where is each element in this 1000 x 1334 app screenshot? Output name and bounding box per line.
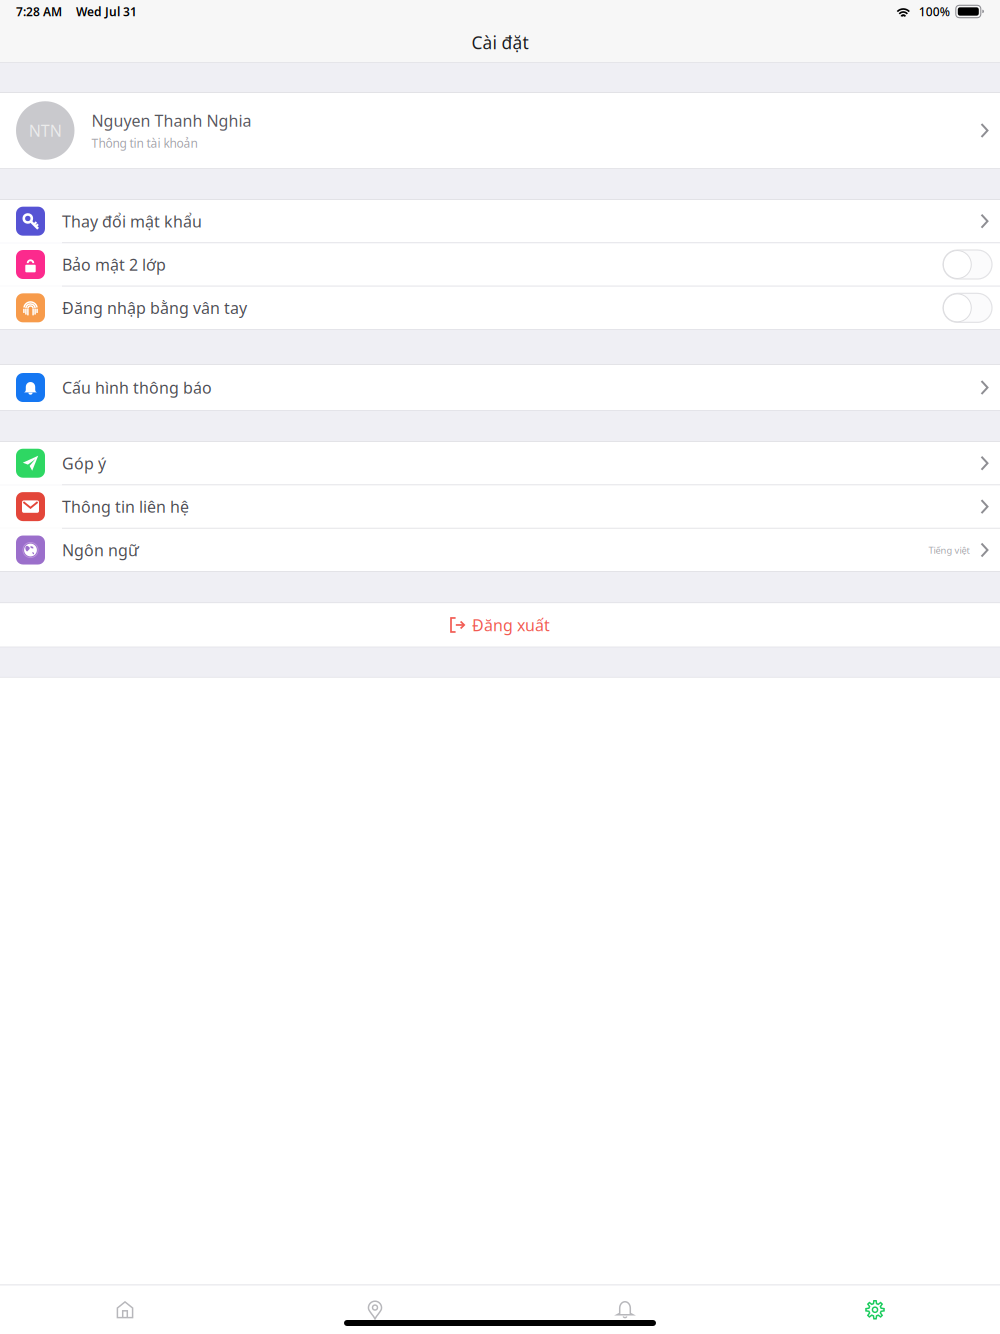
button[interactable]: NTN: [0, 93, 1000, 168]
staticText: Ngôn ngữ: [62, 539, 139, 561]
staticText: Wed Jul 31: [76, 3, 137, 19]
staticText: Bảo mật 2 lớp: [62, 254, 166, 275]
button[interactable]: Locations: [250, 1285, 500, 1334]
button[interactable]: Ngôn ngữ: [0, 529, 1000, 571]
staticText: Thay đổi mật khẩu: [62, 210, 202, 232]
button[interactable]: Bảo mật 2 lớp: [0, 243, 1000, 286]
staticText: NTN: [29, 120, 62, 141]
staticText: Góp ý: [62, 453, 106, 474]
staticText: 100%: [919, 3, 950, 19]
staticText: Tiếng việt: [928, 544, 969, 556]
button[interactable]: Notifications: [500, 1285, 750, 1334]
staticText: Nguyen Thanh Nghia: [91, 110, 251, 131]
staticText: Cấu hình thông báo: [62, 377, 212, 398]
button[interactable]: Home: [0, 1285, 250, 1334]
button[interactable]: Cấu hình thông báo: [0, 365, 1000, 410]
staticText: 7:28 AM: [16, 3, 62, 19]
staticText: Đăng nhập bằng vân tay: [62, 297, 247, 318]
button[interactable]: Góp ý: [0, 442, 1000, 484]
button[interactable]: Thông tin liên hệ: [0, 485, 1000, 528]
staticText: Thông tin tài khoản: [91, 135, 197, 151]
staticText: Cài đặt: [471, 31, 528, 54]
staticText: Đăng xuất: [472, 614, 550, 635]
button[interactable]: Đăng nhập bằng vân tay: [0, 287, 1000, 329]
staticText: Thông tin liên hệ: [62, 496, 189, 517]
button[interactable]: Đăng xuất: [0, 603, 1000, 647]
button[interactable]: Settings: [750, 1285, 1000, 1334]
button[interactable]: Thay đổi mật khẩu: [0, 200, 1000, 242]
